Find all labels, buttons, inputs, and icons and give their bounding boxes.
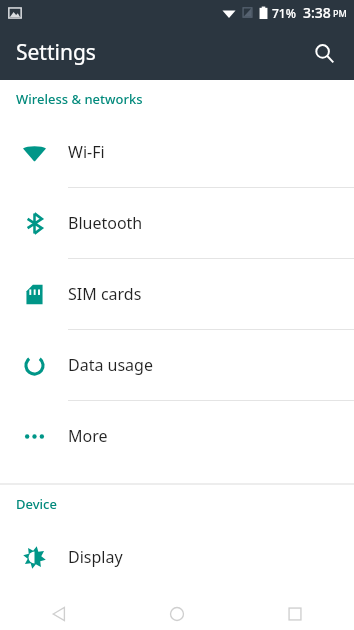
button[interactable]: Display bbox=[0, 522, 354, 592]
staticText: Wireless & networks bbox=[16, 90, 143, 108]
staticText: Display bbox=[68, 546, 123, 568]
staticText: Data usage bbox=[68, 354, 153, 376]
staticText: 71% bbox=[272, 5, 296, 21]
button[interactable]: Search bbox=[302, 31, 346, 75]
staticText: More bbox=[68, 425, 108, 447]
staticText: Device bbox=[16, 495, 57, 513]
staticText: PM bbox=[333, 7, 347, 19]
staticText: Bluetooth bbox=[68, 212, 143, 234]
staticText: 3:38 bbox=[303, 3, 331, 22]
button[interactable]: SIM cards bbox=[0, 259, 354, 329]
button[interactable]: Recents bbox=[236, 598, 354, 630]
button[interactable]: More bbox=[0, 401, 354, 471]
button[interactable]: Wi-Fi bbox=[0, 117, 354, 187]
button[interactable]: Data usage bbox=[0, 330, 354, 400]
button[interactable]: Home bbox=[118, 598, 236, 630]
staticText: Wi-Fi bbox=[68, 141, 105, 163]
staticText: Settings bbox=[16, 38, 96, 67]
staticText: SIM cards bbox=[68, 283, 142, 305]
button[interactable]: Back bbox=[0, 598, 118, 630]
button[interactable]: Bluetooth bbox=[0, 188, 354, 258]
